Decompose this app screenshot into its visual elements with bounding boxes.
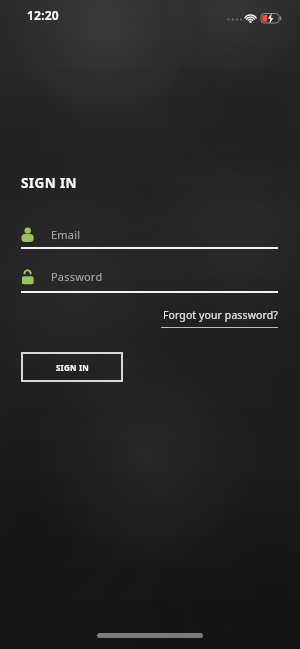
- button[interactable]: Email: [21, 222, 278, 246]
- staticText: SIGN IN: [21, 174, 77, 192]
- button[interactable]: SIGN IN: [21, 352, 123, 382]
- staticText: 12:20: [27, 7, 59, 23]
- button[interactable]: Forgot your password?: [161, 308, 278, 328]
- button[interactable]: Password: [21, 264, 278, 288]
- staticText: Email: [51, 227, 81, 242]
- staticText: Forgot your password?: [163, 308, 278, 322]
- staticText: SIGN IN: [56, 362, 89, 373]
- staticText: Password: [51, 269, 103, 284]
